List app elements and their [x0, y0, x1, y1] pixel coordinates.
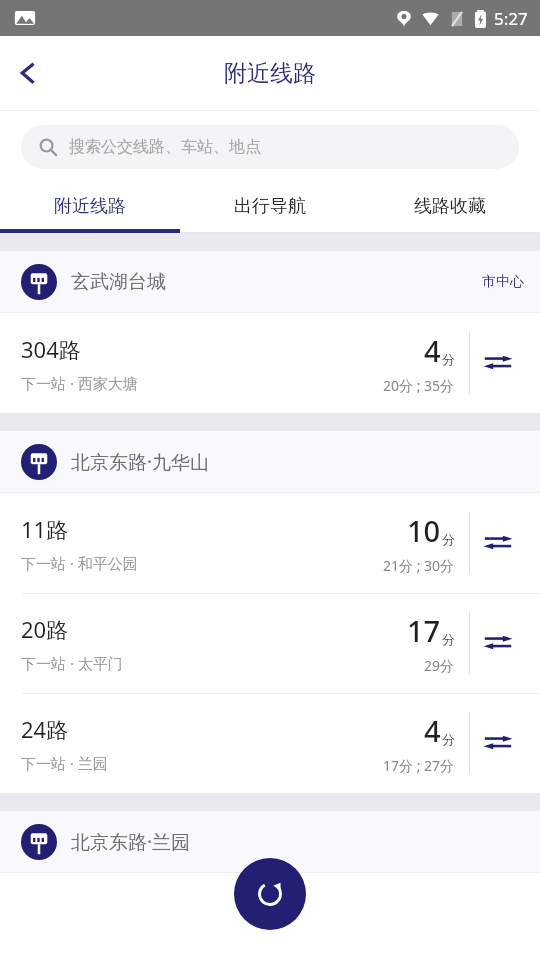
button[interactable]: Switch direction [470, 593, 526, 693]
staticText: 29分 [424, 656, 455, 675]
button[interactable]: 北京东路·九华山 [0, 431, 540, 493]
staticText: 下一站 · 西家大塘 [21, 373, 138, 393]
button[interactable]: Refresh [234, 858, 306, 930]
staticText: 17分 ; 27分 [383, 756, 455, 775]
staticText: 附近线路 [54, 195, 126, 218]
button[interactable]: 11路 [0, 493, 540, 593]
staticText: 下一站 · 太平门 [21, 653, 123, 673]
staticText: 下一站 · 兰园 [21, 753, 108, 773]
button[interactable]: 附近线路 [0, 183, 180, 229]
staticText: 搜索公交线路、车站、地点 [69, 137, 261, 157]
button[interactable]: 24路 [0, 693, 540, 793]
staticText: 分 [442, 351, 455, 367]
staticText: 市中心 [482, 273, 524, 291]
button[interactable]: 304路 [0, 313, 540, 413]
staticText: 10 [407, 511, 441, 550]
button[interactable]: Switch direction [470, 693, 526, 793]
staticText: 分 [442, 531, 455, 547]
staticText: 4 [424, 711, 441, 750]
staticText: 出行导航 [234, 195, 306, 218]
staticText: 分 [442, 631, 455, 647]
staticText: 20路 [21, 614, 69, 644]
staticText: 北京东路·兰园 [71, 829, 191, 855]
button[interactable]: 玄武湖台城 [0, 251, 540, 313]
button[interactable]: Switch direction [470, 493, 526, 593]
staticText: 附近线路 [224, 59, 316, 88]
button[interactable]: Back [0, 45, 56, 101]
staticText: 24路 [21, 714, 69, 744]
staticText: 玄武湖台城 [71, 270, 166, 294]
button[interactable]: 20路 [0, 593, 540, 693]
staticText: 下一站 · 和平公园 [21, 553, 138, 573]
staticText: 4 [424, 331, 441, 370]
staticText: 20分 ; 35分 [383, 376, 455, 395]
button[interactable]: 线路收藏 [360, 183, 540, 229]
staticText: 11路 [21, 514, 69, 544]
staticText: 304路 [21, 334, 81, 364]
staticText: 17 [407, 611, 441, 650]
button[interactable]: Switch direction [470, 313, 526, 413]
staticText: 线路收藏 [414, 195, 486, 218]
staticText: 北京东路·九华山 [71, 449, 210, 475]
button[interactable]: 出行导航 [180, 183, 360, 229]
button[interactable]: 搜索公交线路、车站、地点 [21, 125, 519, 169]
staticText: 5:27 [494, 7, 528, 30]
staticText: 分 [442, 731, 455, 747]
button[interactable]: 北京东路·兰园 [0, 811, 540, 873]
staticText: 21分 ; 30分 [383, 556, 455, 575]
